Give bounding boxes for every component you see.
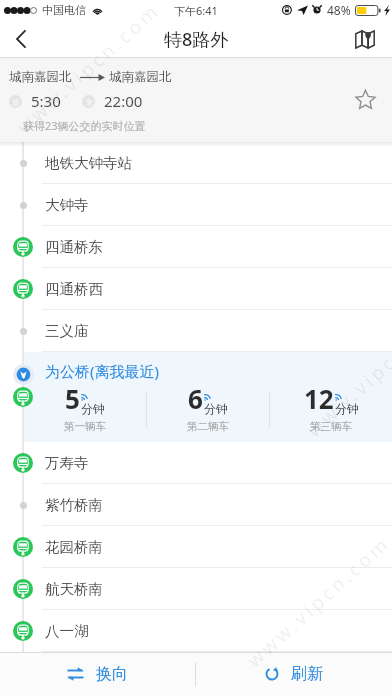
button[interactable]: Back [0,20,42,58]
button[interactable]: 刷新 [196,652,392,696]
staticText: www.vipcn.com [301,300,392,443]
button[interactable]: Map [345,20,385,58]
staticText: 八一湖 [45,622,89,640]
staticText: 紫竹桥南 [45,496,103,514]
staticText: 第二辆车 [187,420,229,433]
button[interactable]: 航天桥南 [0,568,392,610]
staticText: 大钟寺 [45,196,89,214]
staticText: 22:00 [104,91,143,111]
staticText: 首 [12,97,20,107]
staticText: 中国电信 [42,3,86,17]
staticText: 四通桥东 [45,238,103,256]
staticText: 下午6:41 [174,3,218,18]
button[interactable]: 地铁大钟寺站 [0,142,392,184]
staticText: 分钟 [204,401,228,416]
staticText: 三义庙 [45,322,89,340]
staticText: 获得23辆公交的实时位置 [23,118,146,133]
staticText: 第一辆车 [64,420,106,433]
button[interactable]: 三义庙 [0,310,392,352]
staticText: 分钟 [81,401,105,416]
staticText: 特8路外 [164,27,229,52]
staticText: www.vipcn.com [241,530,392,673]
button[interactable]: 花园桥南 [0,526,392,568]
staticText: 12 [304,381,334,416]
button[interactable]: 5 [0,352,392,442]
staticText: 6 [188,381,203,416]
staticText: www.vipcn.com [11,0,165,140]
button[interactable]: 换向 [0,652,195,696]
staticText: 城南嘉园北 [109,69,172,85]
button[interactable]: 四通桥西 [0,268,392,310]
staticText: 5 [65,381,80,416]
staticText: 换向 [96,664,128,684]
button[interactable]: 万寿寺 [0,442,392,484]
staticText: 5:30 [31,91,61,111]
staticText: 48% [327,2,351,18]
staticText: 四通桥西 [45,280,103,298]
button[interactable]: 紫竹桥南 [0,484,392,526]
staticText: 万寿寺 [45,454,89,472]
button[interactable]: Favorite [345,79,385,119]
button[interactable]: 四通桥东 [0,226,392,268]
button[interactable]: 大钟寺 [0,184,392,226]
staticText: 航天桥南 [45,580,103,598]
staticText: 末 [85,97,93,107]
staticText: 城南嘉园北 [9,69,72,85]
staticText: 第三辆车 [310,420,352,433]
staticText: 分钟 [335,401,359,416]
button[interactable]: 八一湖 [0,610,392,652]
staticText: 刷新 [291,664,323,684]
staticText: 花园桥南 [45,538,103,556]
staticText: 为公桥(离我最近) [45,361,160,381]
staticText: 地铁大钟寺站 [45,154,132,172]
